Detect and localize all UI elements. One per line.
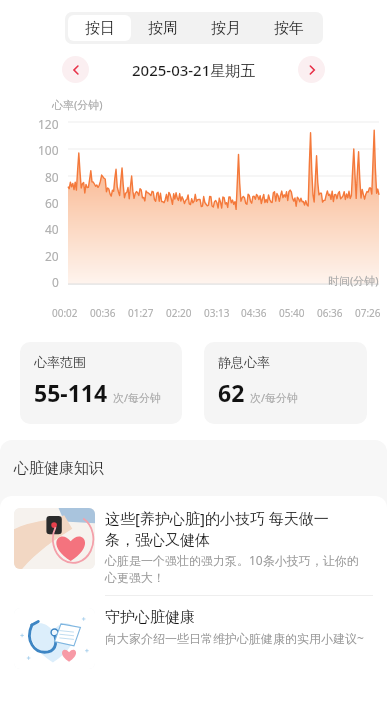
- staticText: 80: [45, 169, 59, 185]
- staticText: 01:27: [128, 306, 154, 320]
- staticText: 00:02: [52, 306, 78, 320]
- staticText: 心脏健康知识: [14, 459, 104, 478]
- staticText: 2025-03-21星期五: [132, 60, 256, 80]
- staticText: 07:26: [355, 306, 381, 320]
- button[interactable]: 按日: [68, 15, 131, 41]
- staticText: 03:13: [204, 306, 230, 320]
- button[interactable]: 按周: [131, 15, 194, 41]
- button[interactable]: Previous day: [62, 56, 89, 83]
- staticText: 60: [45, 195, 59, 211]
- staticText: 04:36: [241, 306, 267, 320]
- button[interactable]: Next day: [298, 56, 325, 83]
- staticText: 次/每分钟: [113, 390, 162, 405]
- staticText: 62: [218, 377, 245, 408]
- staticText: 06:36: [317, 306, 343, 320]
- staticText: 02:20: [166, 306, 192, 320]
- staticText: 心率范围: [34, 354, 86, 370]
- button[interactable]: 守护心脏健康: [0, 596, 387, 679]
- staticText: 40: [45, 221, 59, 237]
- staticText: 55-114: [34, 377, 108, 408]
- staticText: 120: [38, 116, 59, 132]
- staticText: 100: [38, 142, 59, 158]
- staticText: 这些[养护心脏]的小技巧 每天做一 条，强心又健体: [105, 508, 329, 549]
- staticText: 20: [45, 248, 59, 264]
- staticText: 时间(分钟): [328, 273, 379, 288]
- staticText: 次/每分钟: [250, 390, 299, 405]
- button[interactable]: 按月: [194, 15, 257, 41]
- staticText: 按日: [85, 19, 115, 38]
- staticText: 00:36: [90, 306, 116, 320]
- staticText: 心脏是一个强壮的强力泵。10条小技巧，让你的 心更强大！: [105, 552, 359, 585]
- button[interactable]: 按年: [257, 15, 320, 41]
- staticText: 05:40: [279, 306, 305, 320]
- staticText: 按年: [274, 19, 304, 38]
- button[interactable]: 静息心率: [204, 342, 367, 424]
- staticText: 心率(分钟): [52, 97, 103, 112]
- staticText: 守护心脏健康: [105, 608, 195, 627]
- staticText: 按月: [211, 19, 241, 38]
- button[interactable]: 这些[养护心脏]的小技巧 每天做一 条，强心又健体: [0, 496, 387, 595]
- staticText: 按周: [148, 19, 178, 38]
- button[interactable]: 心率范围: [20, 342, 182, 424]
- staticText: 向大家介绍一些日常维护心脏健康的实用小建议~: [105, 630, 364, 646]
- staticText: 静息心率: [218, 354, 270, 370]
- staticText: 0: [52, 274, 59, 290]
